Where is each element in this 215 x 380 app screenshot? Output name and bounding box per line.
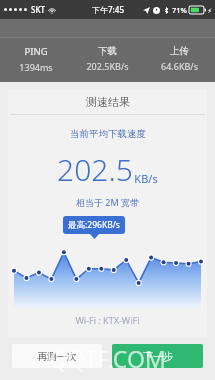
staticText: 再测一次 [37, 350, 77, 363]
staticText: 测速结果 [86, 95, 130, 109]
staticText: 相当于 2M 宽带 [76, 196, 139, 208]
staticText: SKT [31, 4, 45, 15]
staticText: Wi-Fi : KTX-WiFi [75, 314, 140, 326]
staticText: ⚡ [207, 7, 212, 14]
button[interactable]: 下一步 [112, 344, 203, 368]
staticText: 64.6KB/s [161, 60, 198, 72]
button[interactable]: 再测一次 [12, 344, 102, 368]
staticText: 上传 [170, 45, 189, 57]
staticText: 当前平均下载速度 [70, 128, 146, 140]
staticText: 下午7:45 [92, 4, 124, 15]
staticText: 71% [172, 5, 187, 15]
staticText: 下一步 [143, 350, 173, 363]
staticText: PING [24, 45, 48, 58]
staticText: 最高:296KB/s [68, 219, 120, 231]
staticText: 202.5 [57, 149, 133, 190]
staticText: 1394ms [19, 61, 53, 73]
staticText: 下载 [98, 45, 117, 57]
staticText: KB/s [134, 171, 158, 186]
staticText: QQTF.COM [49, 343, 166, 374]
staticText: 202.5KB/s [86, 60, 129, 72]
